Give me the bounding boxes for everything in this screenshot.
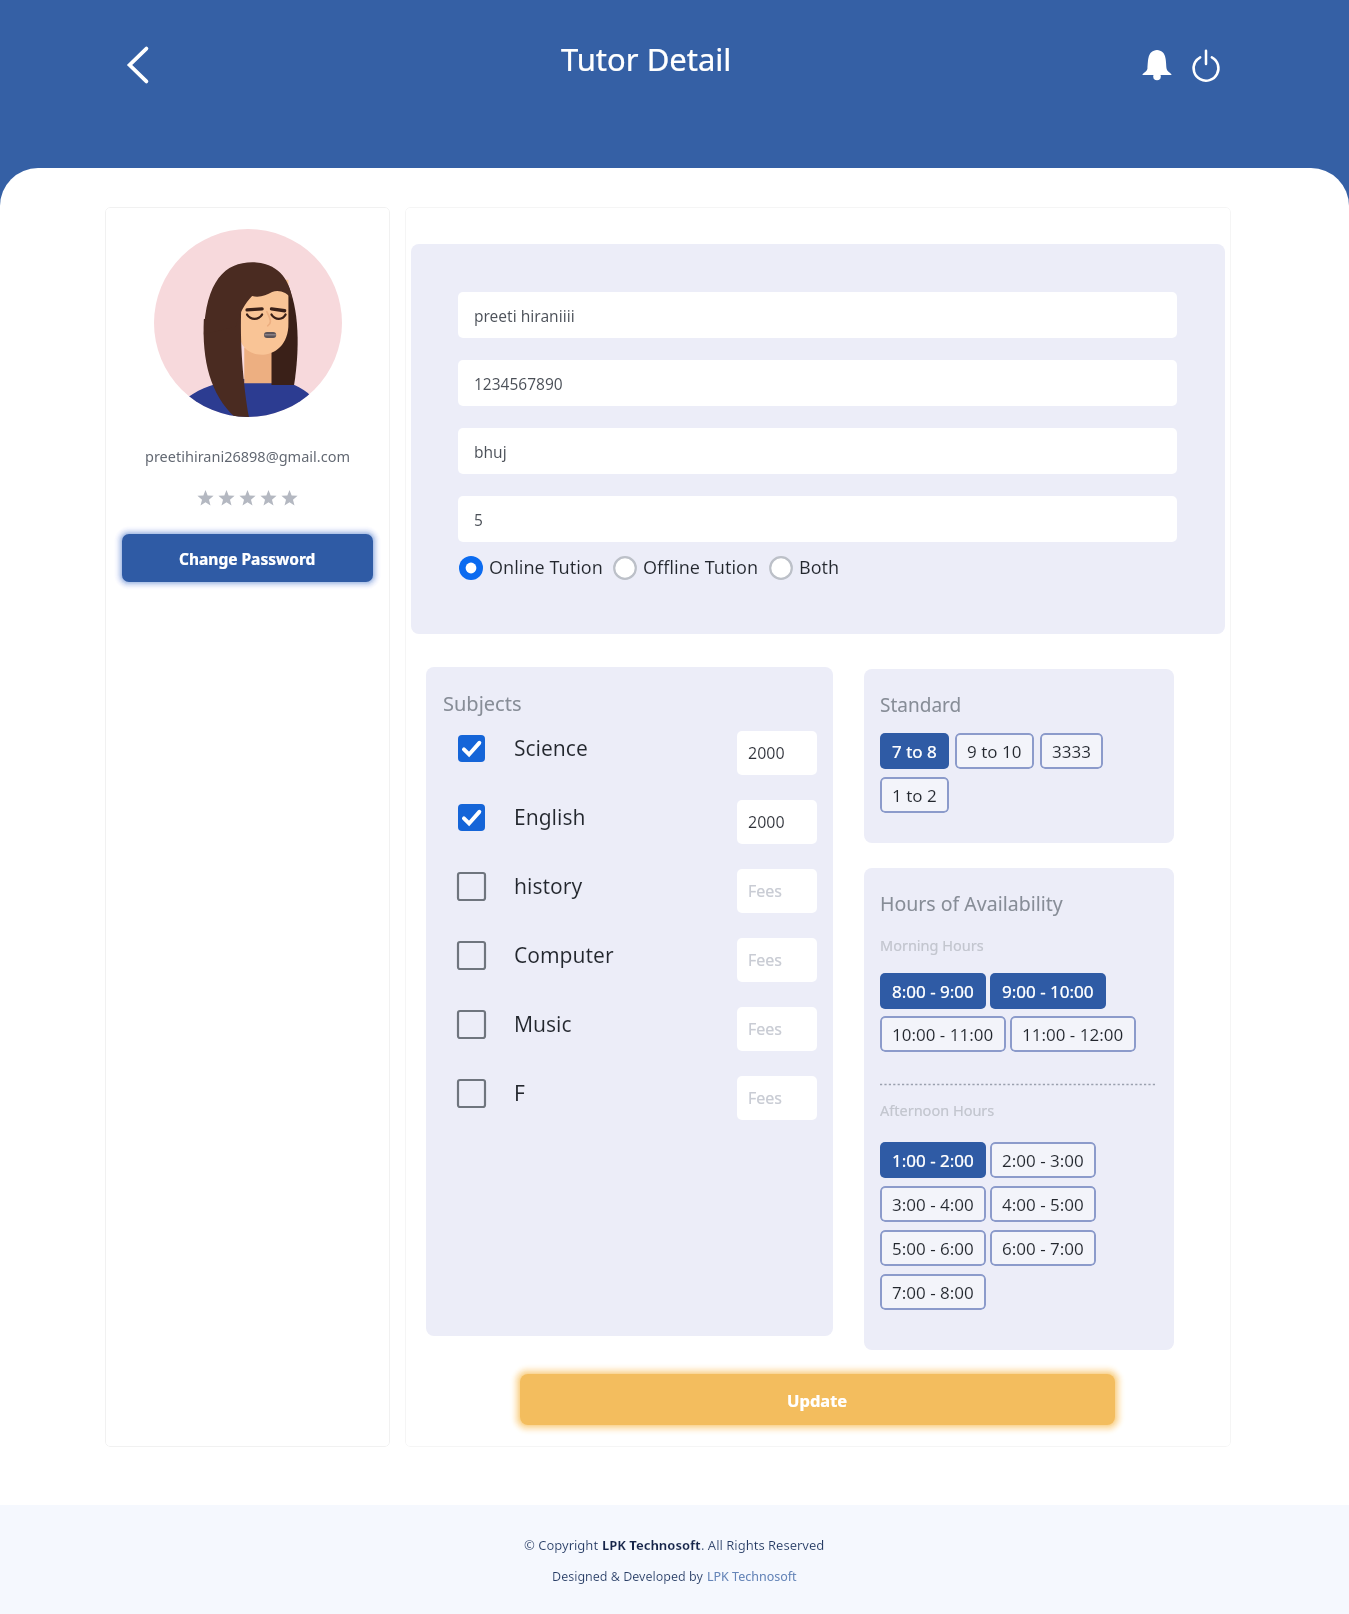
staticText: Computer	[514, 941, 737, 970]
button[interactable]: 7:00 - 8:00	[880, 1274, 986, 1310]
button[interactable]: 5	[458, 496, 1177, 542]
staticText: 6:00 - 7:00	[1002, 1237, 1084, 1260]
button[interactable]: 1 to 2	[880, 777, 949, 813]
staticText: Both	[799, 555, 840, 580]
staticText: bhuj	[474, 441, 507, 462]
staticText: Subjects	[443, 690, 522, 717]
button[interactable]: Fees	[737, 869, 817, 913]
button[interactable]: 9 to 10	[955, 733, 1034, 769]
button[interactable]: 5:00 - 6:00	[880, 1230, 986, 1266]
button[interactable]: Fees	[737, 1076, 817, 1120]
button[interactable]: 6:00 - 7:00	[990, 1230, 1096, 1266]
staticText: LPK Technosoft	[602, 1536, 701, 1554]
staticText: Offline Tution	[643, 555, 759, 580]
button[interactable]: 1234567890	[458, 360, 1177, 406]
button[interactable]: 10:00 - 11:00	[880, 1016, 1006, 1052]
button[interactable]: 8:00 - 9:00	[880, 973, 986, 1009]
button[interactable]: Computer	[426, 921, 833, 990]
staticText: preeti hiraniiii	[474, 305, 575, 326]
button[interactable]: bhuj	[458, 428, 1177, 474]
button[interactable]: Both	[769, 555, 840, 580]
staticText: LPK Technosoft	[707, 1568, 797, 1585]
staticText: Hours of Availability	[880, 890, 1063, 917]
staticText: history	[514, 872, 737, 901]
button[interactable]: preeti hiraniiii	[458, 292, 1177, 338]
button[interactable]: 1:00 - 2:00	[880, 1142, 986, 1178]
staticText: Music	[514, 1010, 737, 1039]
staticText: Change Password	[179, 548, 316, 569]
staticText: Morning Hours	[880, 935, 984, 955]
staticText: 1 to 2	[892, 784, 937, 807]
button[interactable]: Notifications	[1134, 42, 1180, 88]
staticText: 5	[474, 509, 483, 530]
staticText: 2000	[748, 742, 785, 764]
button[interactable]: English	[426, 783, 833, 852]
button[interactable]: history	[426, 852, 833, 921]
staticText: 9:00 - 10:00	[1002, 980, 1094, 1003]
staticText: 8:00 - 9:00	[892, 980, 974, 1003]
staticText: 3:00 - 4:00	[892, 1193, 974, 1216]
button[interactable]: 2:00 - 3:00	[990, 1142, 1096, 1178]
staticText: preetihirani26898@gmail.com	[145, 446, 350, 466]
button[interactable]: Online Tution	[459, 555, 603, 580]
staticText: 2000	[748, 811, 785, 833]
staticText: Afternoon Hours	[880, 1100, 995, 1120]
staticText: Fees	[748, 1018, 783, 1040]
button[interactable]: F	[426, 1059, 833, 1128]
button[interactable]: Music	[426, 990, 833, 1059]
staticText: Standard	[880, 692, 962, 718]
staticText: 1:00 - 2:00	[892, 1149, 974, 1172]
staticText: 11:00 - 12:00	[1022, 1023, 1124, 1046]
button[interactable]: 3:00 - 4:00	[880, 1186, 986, 1222]
button[interactable]: 9:00 - 10:00	[990, 973, 1106, 1009]
staticText: . All Rights Reserved	[701, 1536, 825, 1554]
staticText: 7:00 - 8:00	[892, 1281, 974, 1304]
button[interactable]: Update	[520, 1374, 1115, 1425]
button[interactable]: 2000	[737, 731, 817, 775]
button[interactable]: 2000	[737, 800, 817, 844]
button[interactable]: 11:00 - 12:00	[1010, 1016, 1136, 1052]
staticText: F	[514, 1079, 737, 1108]
staticText: Tutor Detail	[561, 38, 732, 80]
staticText: 5:00 - 6:00	[892, 1237, 974, 1260]
button[interactable]: Change Password	[122, 534, 373, 582]
staticText: Fees	[748, 880, 783, 902]
staticText: 2:00 - 3:00	[1002, 1149, 1084, 1172]
staticText: 7 to 8	[892, 740, 937, 763]
staticText: English	[514, 803, 737, 832]
staticText: Fees	[748, 949, 783, 971]
button[interactable]: 7 to 8	[880, 733, 949, 769]
button[interactable]: Offline Tution	[613, 555, 759, 580]
staticText: 3333	[1052, 740, 1091, 763]
button[interactable]: 4:00 - 5:00	[990, 1186, 1096, 1222]
staticText: Science	[514, 734, 737, 763]
staticText: 10:00 - 11:00	[892, 1023, 994, 1046]
button[interactable]: Fees	[737, 938, 817, 982]
button[interactable]: Science	[426, 714, 833, 783]
staticText: © Copyright	[524, 1536, 602, 1554]
staticText: Fees	[748, 1087, 783, 1109]
staticText: 1234567890	[474, 373, 563, 394]
staticText: 9 to 10	[967, 740, 1022, 763]
staticText: Update	[787, 1389, 848, 1411]
button[interactable]: Back	[113, 40, 163, 90]
staticText: Designed & Developed by	[552, 1568, 707, 1585]
button[interactable]: Logout	[1183, 42, 1229, 88]
button[interactable]: Fees	[737, 1007, 817, 1051]
staticText: 4:00 - 5:00	[1002, 1193, 1084, 1216]
staticText: Online Tution	[489, 555, 603, 580]
button[interactable]: 3333	[1040, 733, 1103, 769]
